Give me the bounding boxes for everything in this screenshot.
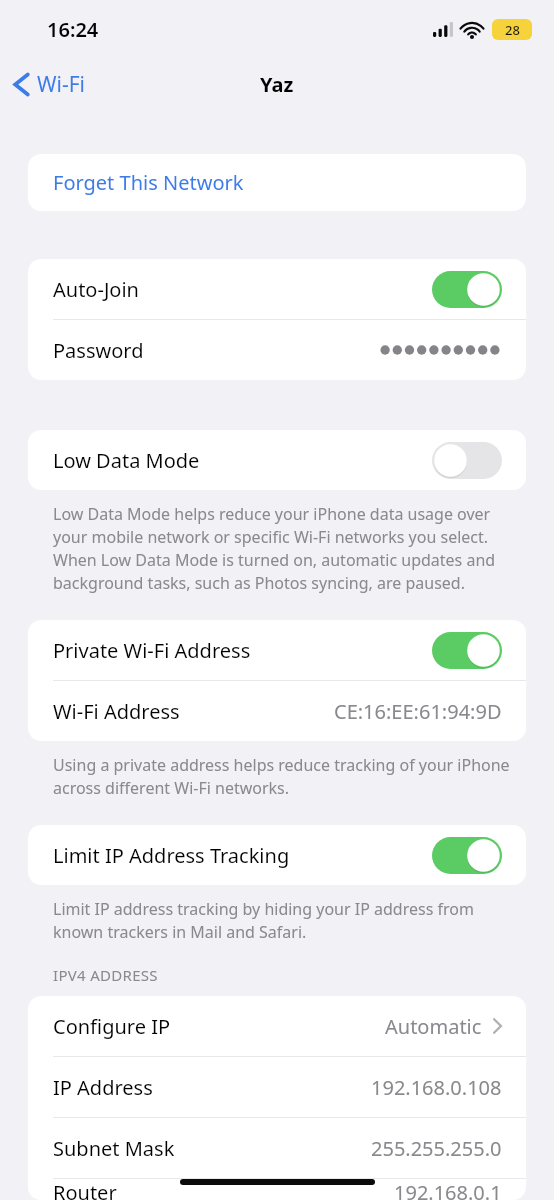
staticText: Low Data Mode helps reduce your iPhone d… (53, 503, 514, 594)
button[interactable]: Low Data Mode switch (432, 442, 502, 479)
staticText: Low Data Mode (53, 447, 200, 474)
staticText: Automatic (385, 1013, 482, 1040)
staticText: Auto-Join (53, 276, 139, 303)
staticText: CE:16:EE:61:94:9D (334, 698, 502, 725)
staticText: Router (53, 1179, 117, 1200)
button[interactable]: Wi-Fi Address (28, 681, 526, 741)
button[interactable]: Subnet Mask (28, 1118, 526, 1178)
staticText: Using a private address helps reduce tra… (53, 754, 514, 799)
staticText: Private Wi-Fi Address (53, 637, 251, 664)
button[interactable]: Configure IP (28, 996, 526, 1056)
staticText: Password (53, 337, 144, 364)
staticText: 192.168.0.108 (371, 1074, 502, 1101)
button[interactable]: Forget This Network (28, 154, 526, 211)
staticText: Limit IP address tracking by hiding your… (53, 898, 514, 943)
button[interactable]: Auto-Join switch (432, 271, 502, 308)
staticText: Configure IP (53, 1013, 171, 1040)
staticText: 255.255.255.0 (371, 1135, 502, 1162)
staticText: Wi-Fi (37, 70, 86, 99)
staticText: Subnet Mask (53, 1135, 175, 1162)
button[interactable]: Limit IP Address Tracking switch (432, 837, 502, 874)
button[interactable]: Private Wi-Fi Address (28, 620, 526, 680)
button[interactable]: Limit IP Address Tracking (28, 825, 526, 885)
staticText: 16:24 (47, 16, 99, 43)
button[interactable]: Router (28, 1179, 526, 1200)
staticText: Wi-Fi Address (53, 698, 180, 725)
button[interactable]: Low Data Mode (28, 430, 526, 490)
button[interactable]: IP Address (28, 1057, 526, 1117)
staticText: IPV4 ADDRESS (53, 965, 158, 985)
staticText: Limit IP Address Tracking (53, 842, 290, 869)
button[interactable]: Private Wi-Fi Address switch (432, 632, 502, 669)
button[interactable]: Auto-Join (28, 259, 526, 319)
button[interactable]: Password (28, 320, 526, 380)
staticText: 28 (505, 21, 520, 39)
staticText: Yaz (260, 71, 294, 98)
staticText: IP Address (53, 1074, 153, 1101)
button[interactable]: Wi-Fi (0, 64, 96, 105)
staticText: Forget This Network (53, 169, 244, 196)
staticText: 192.168.0.1 (394, 1179, 502, 1200)
